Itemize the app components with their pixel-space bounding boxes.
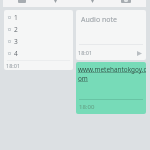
staticText: 4 [14, 49, 18, 58]
button[interactable]: Camera [121, 0, 131, 3]
button[interactable]: Keyboard [18, 0, 26, 3]
staticText: 18:01 [6, 62, 21, 69]
button[interactable]: 2 [8, 23, 73, 35]
button[interactable]: Play [137, 51, 142, 56]
staticText: 18:00 [79, 103, 95, 111]
staticText: 18:01 [78, 49, 93, 56]
button[interactable]: 1 [8, 11, 73, 23]
button[interactable]: 4 [8, 47, 73, 59]
staticText: om [78, 74, 88, 83]
staticText: www.metehantokgoy.c [78, 65, 146, 74]
staticText: 3 [14, 37, 18, 46]
staticText: Audio note [81, 15, 118, 25]
staticText: 2 [14, 25, 18, 34]
button[interactable]: Expand [53, 0, 58, 3]
button[interactable]: www.metehantokgoy.c [76, 62, 146, 114]
button[interactable]: 3 [8, 35, 73, 47]
staticText: 1 [14, 13, 18, 22]
button[interactable]: More options [90, 0, 95, 3]
button[interactable]: 1 [4, 10, 73, 70]
button[interactable]: Audio note [76, 10, 146, 60]
